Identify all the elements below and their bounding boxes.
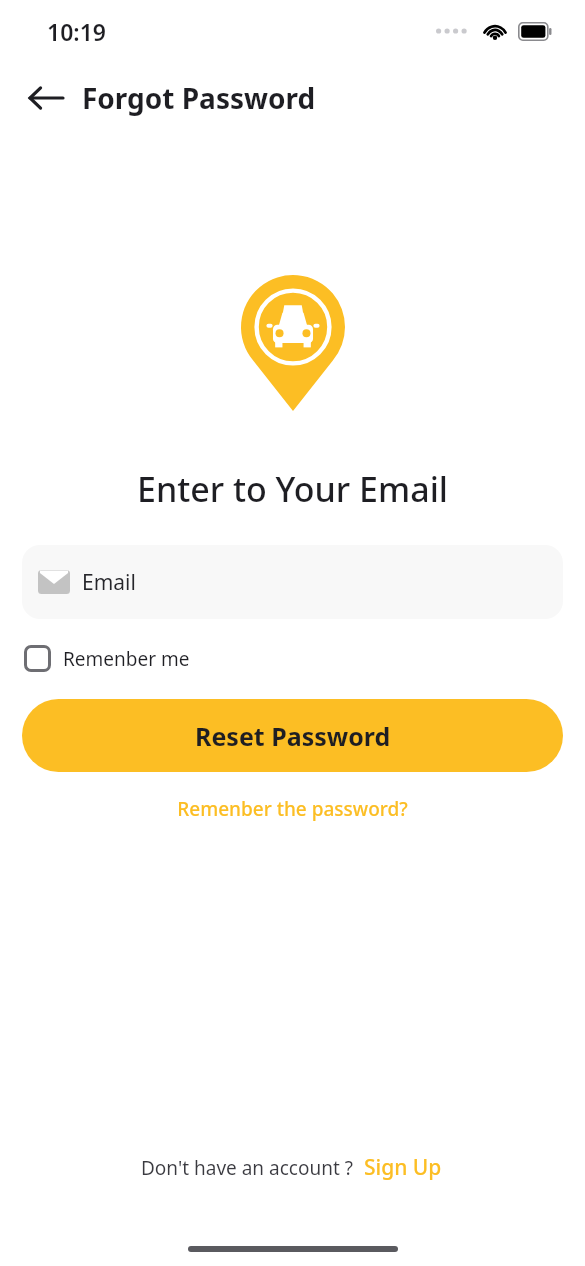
button[interactable]: Back	[22, 74, 70, 122]
button[interactable]: Reset Password	[22, 699, 563, 772]
button[interactable]: Sign Up	[362, 1149, 444, 1186]
button[interactable]: Remenber the password?	[0, 792, 585, 826]
button[interactable]: Email	[22, 545, 563, 619]
staticText: 10:19	[47, 16, 106, 47]
staticText: Reset Password	[195, 719, 391, 753]
staticText: Email	[82, 568, 136, 597]
staticText: Remenber me	[63, 646, 190, 672]
staticText: Don't have an account ?	[141, 1155, 353, 1181]
staticText: Enter to Your Email	[0, 466, 585, 512]
button[interactable]: Remenber me	[22, 641, 192, 676]
staticText: Forgot Password	[82, 79, 316, 117]
